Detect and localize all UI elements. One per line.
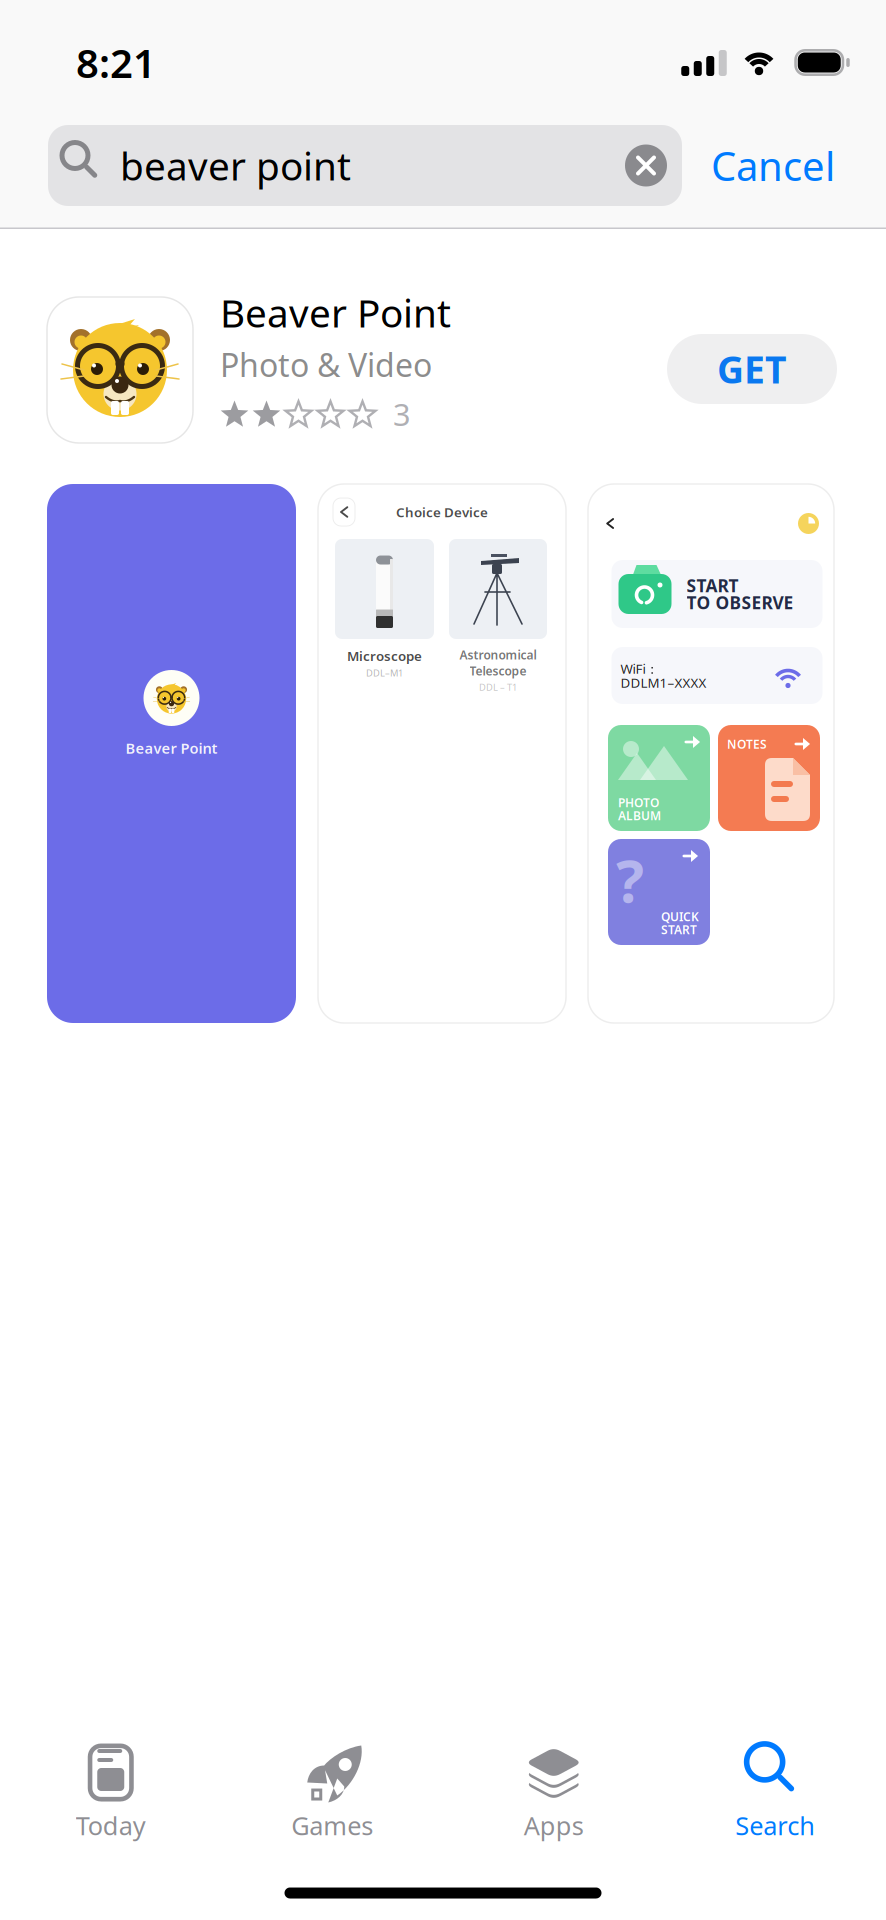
staticText: ? <box>616 841 644 919</box>
staticText: 3 <box>393 394 411 434</box>
button[interactable]: Search <box>664 1700 886 1866</box>
staticText: Cancel <box>711 139 835 192</box>
staticText: Beaver Point <box>125 738 217 758</box>
staticText: DDL – T1 <box>479 681 517 693</box>
staticText: DDL–M1 <box>366 667 403 679</box>
staticText: beaver point <box>120 140 351 191</box>
button[interactable]: Cancel <box>682 125 837 206</box>
staticText: QUICK <box>661 908 699 924</box>
staticText: Astronomical <box>459 647 536 663</box>
staticText: START <box>686 574 738 597</box>
staticText: Photo & Video <box>220 343 432 386</box>
button[interactable]: GET <box>667 334 837 404</box>
staticText: Games <box>291 1809 373 1842</box>
staticText: DDLM1–XXXX <box>620 674 706 691</box>
button[interactable]: Games <box>221 1700 443 1866</box>
staticText: 8:21 <box>76 36 156 89</box>
staticText: Telescope <box>469 663 526 679</box>
staticText: START <box>661 921 697 937</box>
button[interactable]: Apps <box>443 1700 664 1866</box>
button[interactable]: Clear text <box>618 137 674 193</box>
staticText: PHOTO <box>618 794 659 810</box>
staticText: WiFi： <box>620 660 658 677</box>
staticText: Today <box>76 1809 146 1842</box>
staticText: ALBUM <box>618 807 661 823</box>
staticText: TO OBSERVE <box>686 591 793 614</box>
staticText: GET <box>717 344 787 394</box>
button[interactable]: Today <box>0 1700 221 1866</box>
staticText: Search <box>735 1809 815 1842</box>
staticText: Choice Device <box>396 503 488 521</box>
staticText: Apps <box>524 1809 584 1842</box>
staticText: NOTES <box>727 736 767 752</box>
staticText: Beaver Point <box>220 287 451 338</box>
staticText: Microscope <box>347 647 422 665</box>
